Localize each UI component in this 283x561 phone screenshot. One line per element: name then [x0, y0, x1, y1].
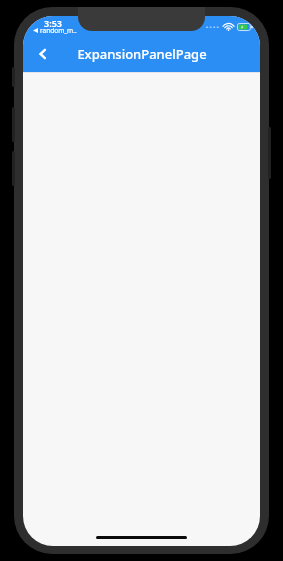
staticText: ExpansionPanelPage — [77, 45, 207, 63]
button[interactable]: Back — [25, 36, 61, 72]
staticText: random_m.. — [40, 26, 77, 35]
staticText: 3:53 — [44, 17, 62, 29]
